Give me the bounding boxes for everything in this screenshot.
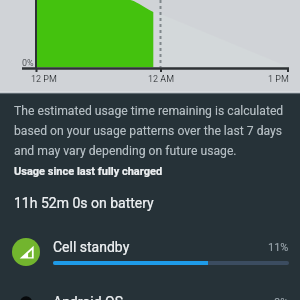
staticText: 12 AM — [148, 74, 175, 85]
staticText: 11h 52m 0s on battery — [14, 195, 154, 211]
staticText: The estimated usage time remaining is ca… — [14, 104, 290, 158]
other: Android OS icon — [12, 293, 40, 300]
button[interactable]: Cell standby icon — [0, 224, 300, 279]
staticText: 0% — [22, 58, 34, 69]
other: Cell standby icon — [12, 238, 40, 266]
staticText: 12 PM — [31, 74, 57, 85]
staticText: 0% — [274, 296, 289, 300]
staticText: Usage since last fully charged — [14, 165, 163, 178]
button[interactable]: Android OS icon — [0, 279, 300, 300]
staticText: 11% — [268, 241, 289, 254]
staticText: 1 PM — [268, 74, 289, 85]
staticText: Cell standby — [53, 239, 268, 255]
staticText: Android OS — [53, 294, 274, 300]
